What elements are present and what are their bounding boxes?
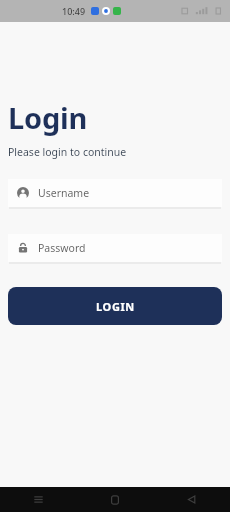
button[interactable]: Username (8, 179, 222, 207)
button[interactable]: Recent apps (0, 487, 76, 512)
staticText: Password (38, 241, 86, 255)
staticText: LOGIN (96, 299, 135, 314)
staticText: 10:49 (62, 5, 86, 17)
other: Username (17, 187, 29, 199)
button[interactable]: Home (76, 487, 153, 512)
button[interactable]: Back (153, 487, 230, 512)
button[interactable]: LOGIN (8, 287, 222, 325)
staticText: Username (38, 186, 90, 200)
staticText: Please login to continue (8, 145, 127, 159)
staticText: Login (8, 98, 88, 137)
other: Password (17, 242, 29, 254)
button[interactable]: Password (8, 234, 222, 262)
